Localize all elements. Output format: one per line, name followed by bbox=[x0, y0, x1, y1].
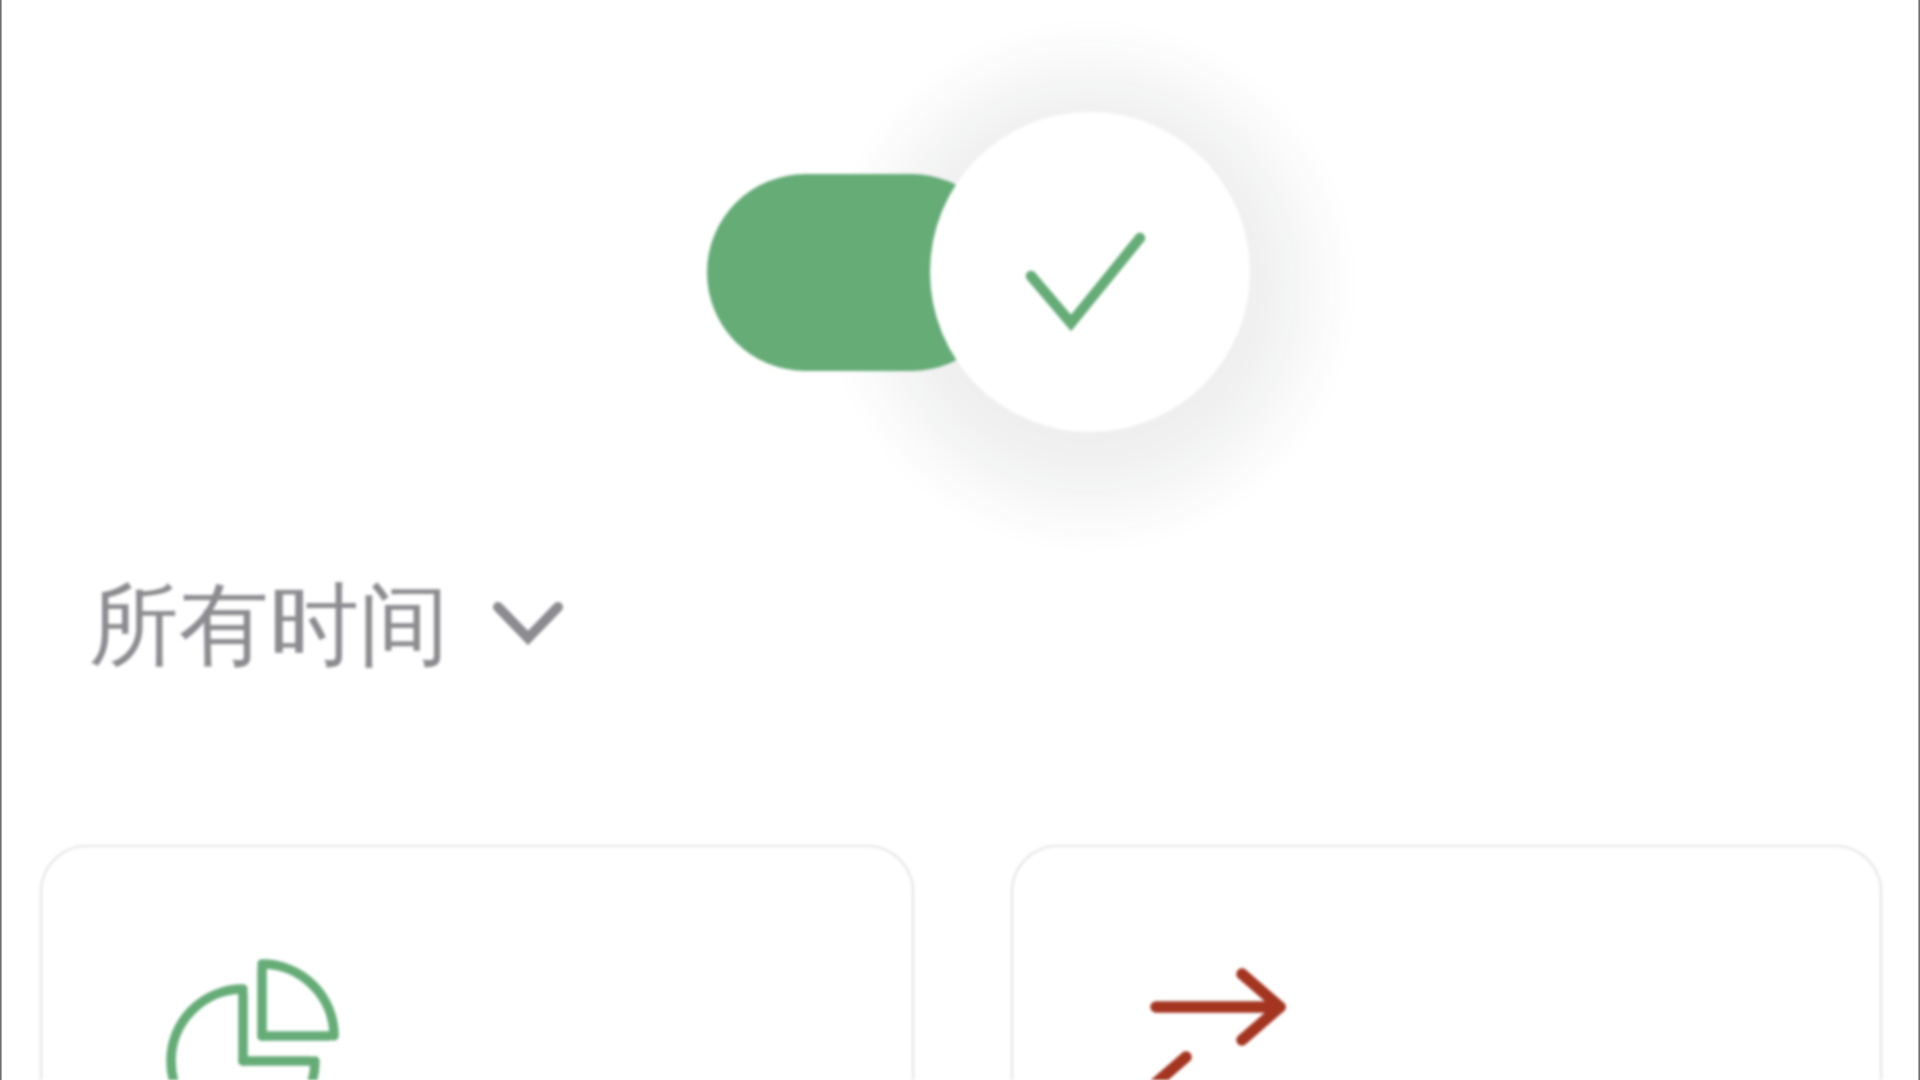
button[interactable]: Statistics bbox=[40, 845, 914, 1080]
button[interactable]: 所有时间 bbox=[80, 548, 600, 693]
button[interactable]: Transfers bbox=[1011, 845, 1882, 1080]
staticText: 所有时间 bbox=[89, 569, 449, 682]
button[interactable]: Enabled toggle bbox=[600, 20, 1400, 540]
